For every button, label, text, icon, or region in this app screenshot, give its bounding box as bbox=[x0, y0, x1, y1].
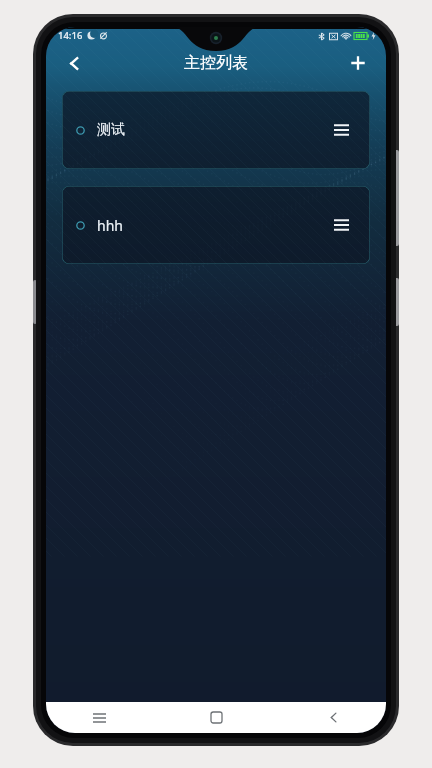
button[interactable]: 测试 bbox=[62, 91, 370, 169]
button[interactable]: hhh bbox=[62, 186, 370, 264]
button[interactable]: Menu bbox=[326, 115, 356, 145]
staticText: hhh bbox=[97, 216, 123, 235]
button[interactable]: Add bbox=[339, 44, 377, 82]
staticText: 14:16 bbox=[58, 29, 83, 42]
button[interactable]: Recents bbox=[82, 702, 116, 733]
button[interactable]: Back bbox=[55, 44, 93, 82]
button[interactable]: Back bbox=[316, 702, 350, 733]
staticText: 测试 bbox=[97, 121, 125, 139]
button[interactable]: Menu bbox=[326, 210, 356, 240]
button[interactable]: Home bbox=[199, 702, 233, 733]
staticText: 主控列表 bbox=[184, 53, 248, 73]
